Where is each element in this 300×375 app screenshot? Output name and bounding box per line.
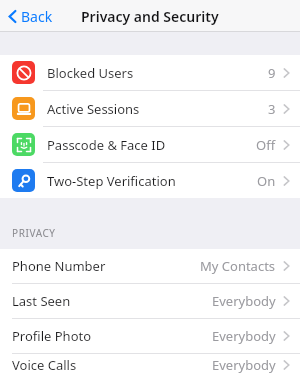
staticText: Privacy and Security <box>81 7 219 26</box>
staticText: Everybody <box>212 292 276 310</box>
staticText: My Contacts <box>200 257 276 275</box>
button[interactable]: Passcode and Face ID <box>0 127 300 162</box>
staticText: Back <box>21 7 53 26</box>
staticText: 3 <box>268 100 276 118</box>
staticText: Off <box>256 136 276 154</box>
staticText: Passcode & Face ID <box>47 136 166 154</box>
staticText: 9 <box>268 64 276 82</box>
button[interactable]: Phone Number <box>0 249 300 283</box>
button[interactable]: Blocked Users <box>0 55 300 90</box>
button[interactable]: Voice Calls <box>0 354 300 375</box>
staticText: Last Seen <box>12 292 71 310</box>
staticText: Phone Number <box>12 257 106 275</box>
button[interactable]: Profile Photo <box>0 319 300 353</box>
button[interactable]: Two-Step Verification <box>0 163 300 198</box>
staticText: PRIVACY <box>12 226 56 240</box>
staticText: Two-Step Verification <box>47 172 176 190</box>
staticText: Voice Calls <box>12 356 77 374</box>
staticText: Everybody <box>212 356 276 374</box>
staticText: Everybody <box>212 327 276 345</box>
other: Passcode and Face ID <box>12 133 35 156</box>
other: Two-Step Verification <box>12 169 35 192</box>
button[interactable]: Active Sessions <box>0 91 300 126</box>
staticText: Blocked Users <box>47 64 134 82</box>
other: Blocked Users <box>12 61 35 84</box>
button[interactable]: Back <box>5 4 56 29</box>
button[interactable]: Last Seen <box>0 284 300 318</box>
staticText: Profile Photo <box>12 327 92 345</box>
other: Active Sessions <box>12 97 35 120</box>
staticText: Active Sessions <box>47 100 140 118</box>
staticText: On <box>257 172 276 190</box>
